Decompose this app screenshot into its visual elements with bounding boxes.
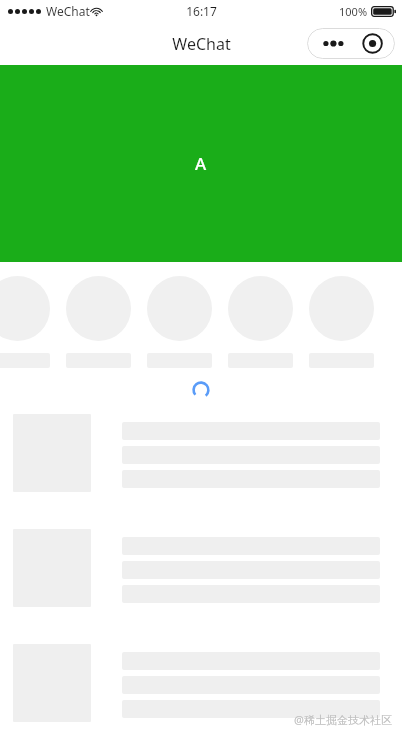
button[interactable] — [13, 414, 380, 492]
staticText: @稀土掘金技术社区 — [294, 712, 392, 727]
staticText: 16:17 — [186, 3, 217, 19]
button[interactable] — [13, 644, 380, 722]
button[interactable] — [147, 276, 212, 368]
button[interactable]: Mini program menu — [307, 28, 395, 59]
button[interactable] — [66, 276, 131, 368]
button[interactable] — [228, 276, 293, 368]
button[interactable] — [309, 276, 374, 368]
button[interactable] — [0, 276, 50, 368]
staticText: WeChat — [46, 3, 90, 19]
button[interactable]: A — [0, 65, 402, 262]
staticText: 100% — [339, 4, 368, 19]
button[interactable] — [13, 529, 380, 607]
staticText: WeChat — [172, 33, 231, 55]
staticText: A — [195, 152, 207, 175]
